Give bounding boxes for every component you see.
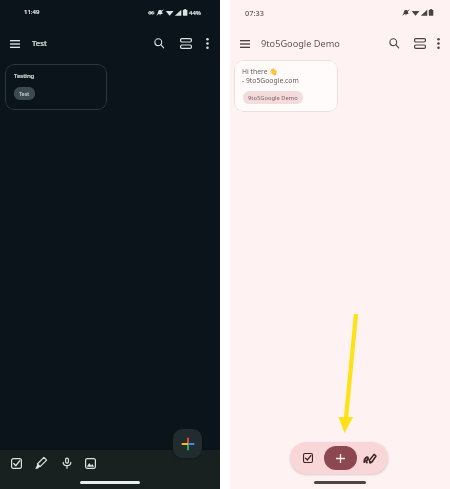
button[interactable]: New list	[5, 452, 27, 474]
button[interactable]: New voice note	[56, 452, 78, 474]
staticText: Testing	[14, 72, 35, 80]
staticText: 9to5Google Demo	[248, 94, 298, 102]
button[interactable]: New drawing	[360, 448, 380, 468]
staticText: 44%	[189, 9, 201, 17]
staticText: - 9to5Google.com	[242, 76, 299, 85]
button[interactable]: New list	[298, 448, 318, 468]
staticText: Hi there 👋	[242, 67, 278, 76]
button[interactable]: Create new note	[324, 446, 357, 470]
button[interactable]: Create new note	[173, 429, 202, 458]
button[interactable]: Search	[384, 33, 405, 54]
button[interactable]: Toggle view	[175, 33, 196, 54]
staticText: Test	[32, 38, 47, 49]
button[interactable]: New drawing	[30, 452, 52, 474]
button[interactable]: Toggle view	[409, 33, 430, 54]
button[interactable]: New image note	[79, 452, 101, 474]
button[interactable]: Hi there 👋	[234, 60, 338, 112]
button[interactable]: More options	[428, 33, 449, 54]
staticText: Test	[19, 90, 30, 97]
staticText: 9to5Google Demo	[261, 37, 340, 50]
staticText: 11:49	[24, 8, 40, 16]
button[interactable]: Testing	[5, 64, 107, 110]
button[interactable]: Navigation menu	[4, 33, 25, 54]
staticText: 07:33	[245, 8, 264, 18]
button[interactable]: More options	[197, 33, 218, 54]
button[interactable]: Navigation menu	[234, 33, 255, 54]
button[interactable]: Search	[149, 33, 170, 54]
